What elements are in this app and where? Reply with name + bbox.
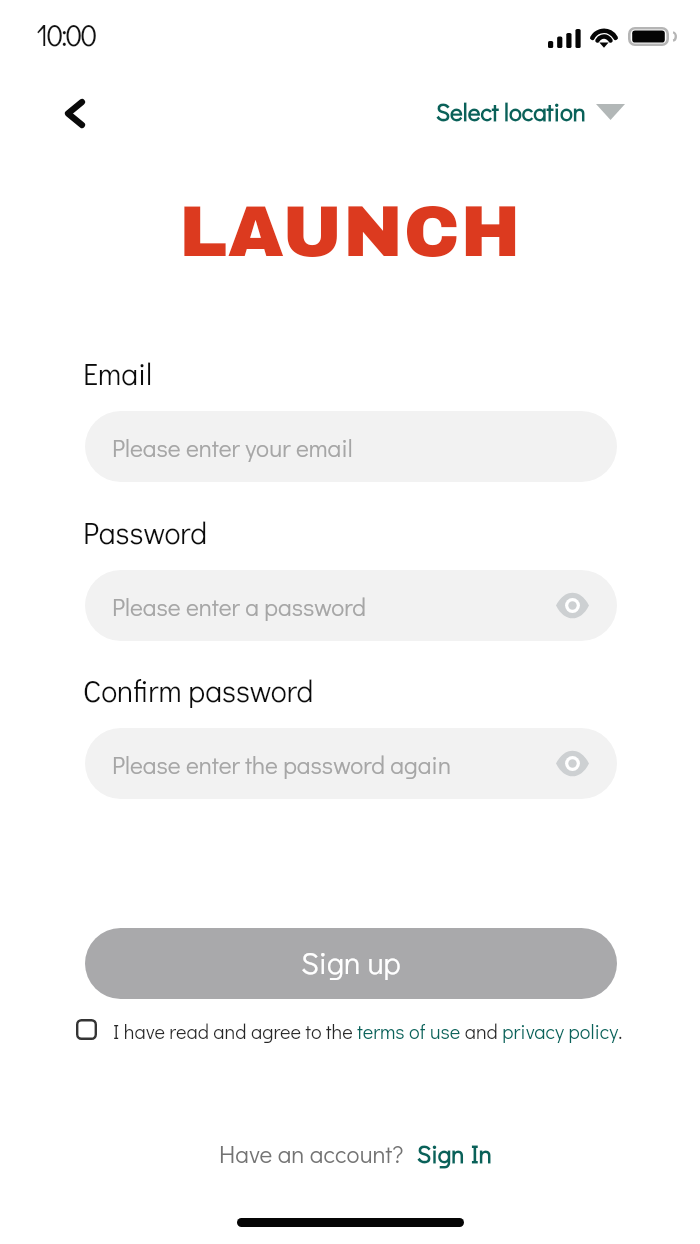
staticText: Sign up — [301, 942, 401, 982]
staticText: Please enter a password — [112, 590, 367, 622]
button[interactable]: Sign up — [85, 928, 617, 999]
staticText: Select location — [436, 96, 586, 128]
button[interactable]: Back — [54, 92, 96, 134]
button[interactable]: Agree to terms — [76, 1019, 97, 1040]
button[interactable]: Show password — [556, 747, 589, 780]
staticText: Please enter your email — [112, 431, 353, 463]
button[interactable]: Please enter a password — [85, 570, 617, 641]
staticText: Email — [83, 354, 153, 393]
staticText: Confirm password — [83, 671, 314, 710]
staticText: Have an account? — [219, 1138, 404, 1170]
button[interactable]: Select location — [436, 96, 625, 128]
button[interactable]: Sign — [417, 1138, 492, 1170]
staticText: Please enter the password again — [112, 748, 451, 780]
button[interactable]: Show password — [556, 589, 589, 622]
staticText: In — [471, 1138, 492, 1170]
staticText: 10:00 — [36, 15, 96, 54]
button[interactable]: Please enter the password again — [85, 728, 617, 799]
button[interactable]: Please enter your email — [85, 411, 617, 482]
staticText: Password — [83, 513, 208, 552]
staticText: I have read and agree to the terms of us… — [113, 1018, 623, 1044]
staticText: LAUNCH — [179, 193, 522, 271]
staticText: Sign — [417, 1138, 465, 1170]
